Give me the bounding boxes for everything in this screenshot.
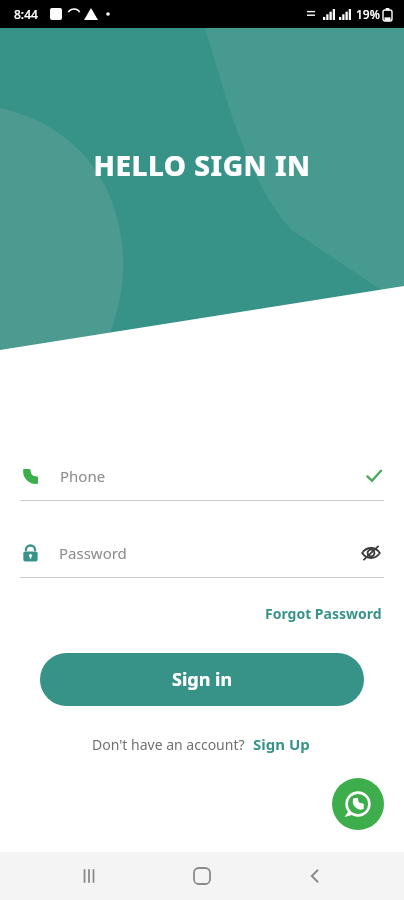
staticText: HELLO SIGN IN: [93, 146, 311, 184]
staticText: Sign Up: [253, 734, 310, 754]
button[interactable]: Password: [0, 529, 404, 577]
button[interactable]: Phone: [0, 452, 404, 500]
staticText: 8:44: [14, 6, 38, 22]
button[interactable]: Sign in: [40, 653, 364, 706]
other: Phone: [20, 465, 42, 487]
button[interactable]: Recents: [65, 852, 113, 900]
other: Valid: [364, 466, 384, 486]
button[interactable]: Show password: [358, 540, 384, 566]
button[interactable]: Forgot Password: [243, 598, 404, 629]
button[interactable]: Back: [291, 852, 339, 900]
staticText: Phone: [60, 466, 106, 486]
staticText: Forgot Password: [265, 604, 382, 623]
other: Password: [20, 543, 41, 564]
button[interactable]: Sign Up: [251, 730, 312, 758]
button[interactable]: Chat on WhatsApp: [332, 778, 384, 830]
button[interactable]: Home: [178, 852, 226, 900]
staticText: 19%: [356, 6, 380, 22]
staticText: Sign in: [172, 667, 233, 692]
staticText: Password: [59, 543, 127, 563]
staticText: Don't have an account?: [92, 735, 245, 754]
